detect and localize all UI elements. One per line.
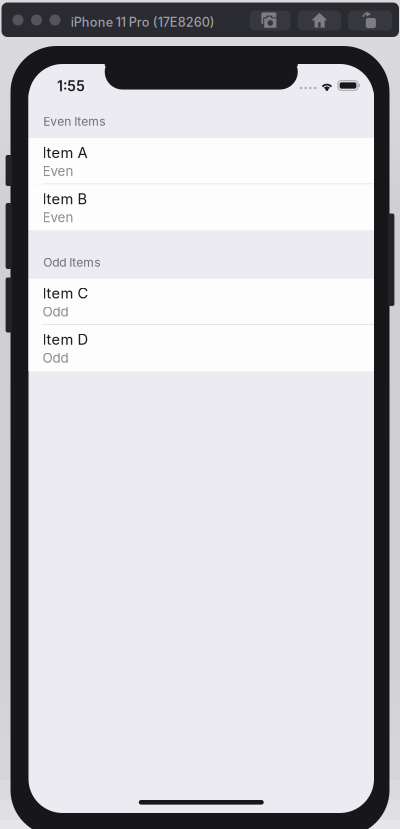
- button[interactable]: Rotate: [348, 10, 392, 30]
- staticText: Odd Items: [43, 255, 100, 269]
- staticText: Item C: [42, 284, 88, 302]
- button[interactable]: Item A: [28, 138, 374, 184]
- button[interactable]: Item B: [28, 184, 374, 231]
- button[interactable]: Item C: [28, 279, 374, 325]
- staticText: Item B: [42, 190, 87, 208]
- button[interactable]: Screenshot: [249, 10, 290, 30]
- staticText: Even: [42, 209, 73, 225]
- button[interactable]: Window controls: [1, 2, 71, 37]
- staticText: Item D: [42, 331, 88, 348]
- staticText: Odd: [42, 350, 68, 366]
- staticText: Odd: [42, 304, 68, 320]
- staticText: iPhone 11 Pro (17E8260): [71, 14, 215, 30]
- staticText: Even Items: [43, 114, 105, 128]
- button[interactable]: Home: [297, 10, 341, 30]
- staticText: 1:55: [57, 78, 85, 94]
- staticText: Item A: [42, 144, 87, 161]
- button[interactable]: Item D: [28, 325, 374, 371]
- staticText: Even: [42, 163, 73, 179]
